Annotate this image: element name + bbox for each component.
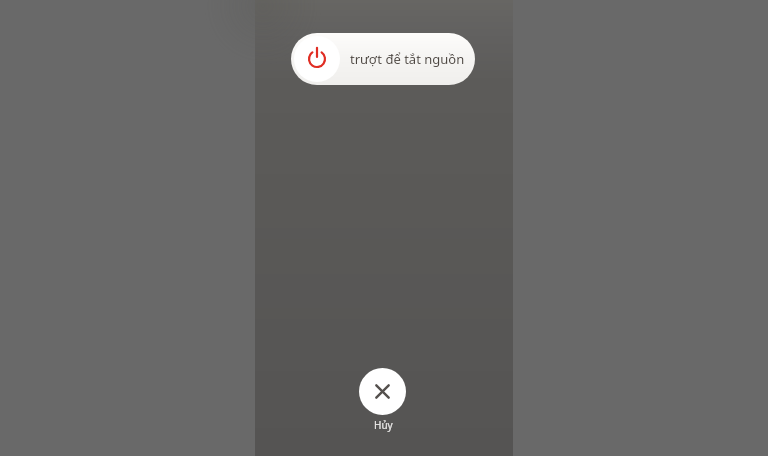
staticText: trượt để tắt nguồn [350,50,465,68]
staticText: Hủy [374,418,393,432]
button[interactable] [359,368,406,415]
button[interactable]: trượt để tắt nguồn [291,33,475,85]
